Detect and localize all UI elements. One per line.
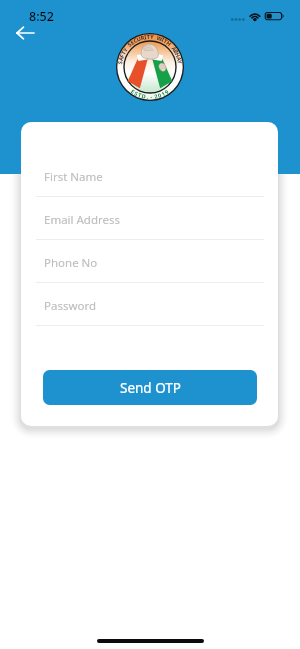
staticText: Phone No xyxy=(44,255,98,271)
button[interactable]: Back xyxy=(6,20,44,46)
button[interactable]: Send OTP xyxy=(43,370,257,405)
staticText: Send OTP xyxy=(120,379,181,397)
staticText: Password xyxy=(44,298,97,314)
button[interactable]: Phone No xyxy=(43,248,256,282)
staticText: First Name xyxy=(44,169,103,185)
staticText: 8:52 xyxy=(29,8,54,25)
button[interactable]: First Name xyxy=(43,162,256,196)
button[interactable]: Password xyxy=(43,291,256,325)
button[interactable]: Email Address xyxy=(43,205,256,239)
staticText: Email Address xyxy=(44,212,121,228)
